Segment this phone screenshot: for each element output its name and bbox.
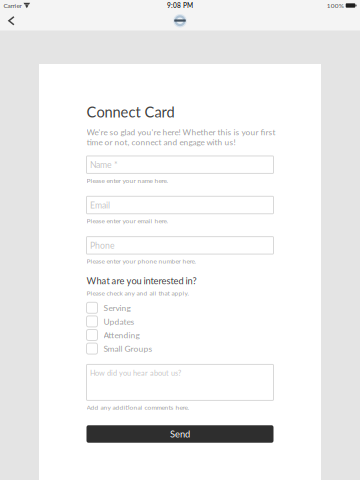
button[interactable]: Name * — [86, 156, 273, 173]
button[interactable]: How did you hear about us? — [86, 364, 273, 400]
staticText: We're so glad you're here! Whether this … — [86, 127, 275, 147]
staticText: Carrier — [3, 2, 21, 9]
button[interactable]: Send — [86, 425, 273, 443]
staticText: Add any additional comments here. — [86, 403, 189, 411]
staticText: Phone — [90, 240, 115, 251]
staticText: Name * — [90, 159, 118, 170]
button[interactable]: Email — [86, 196, 273, 214]
staticText: Updates — [103, 316, 134, 326]
staticText: Send — [170, 428, 190, 440]
staticText: Please enter your name here. — [86, 176, 168, 184]
staticText: 100% — [327, 2, 344, 9]
staticText: Please enter your email here. — [86, 217, 168, 225]
staticText: Email — [90, 200, 110, 210]
button[interactable]: Small Groups — [86, 342, 273, 355]
staticText: Connect Card — [86, 103, 174, 121]
button[interactable]: Attending — [86, 328, 273, 342]
staticText: Please enter your phone number here. — [86, 257, 196, 265]
staticText: Serving — [103, 303, 130, 313]
staticText: 9:08 PM — [167, 2, 193, 9]
staticText: Please check any and all that apply. — [86, 289, 189, 297]
staticText: How did you hear about us? — [90, 368, 181, 377]
staticText: What are you interested in? — [86, 275, 196, 286]
button[interactable]: Phone — [86, 237, 273, 254]
staticText: Small Groups — [103, 344, 152, 354]
button[interactable]: Serving — [86, 301, 273, 315]
staticText: Attending — [103, 330, 139, 340]
button[interactable]: Back — [0, 11, 26, 30]
button[interactable]: Updates — [86, 315, 273, 328]
